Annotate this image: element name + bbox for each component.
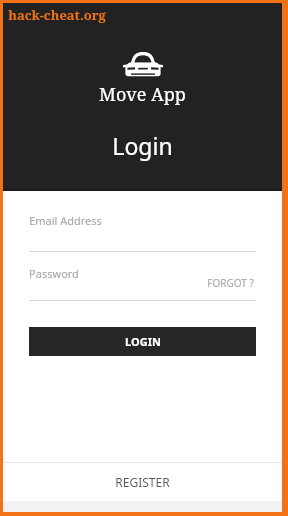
staticText: hack-cheat.org bbox=[8, 6, 106, 24]
staticText: FORGOT ? bbox=[207, 276, 254, 290]
staticText: Password bbox=[29, 266, 79, 281]
staticText: REGISTER bbox=[115, 474, 170, 490]
staticText: LOGIN bbox=[125, 334, 161, 349]
staticText: Email Address bbox=[29, 213, 102, 228]
staticText: Login bbox=[112, 130, 173, 161]
button[interactable]: Email Address bbox=[29, 213, 256, 251]
other: Car logo bbox=[123, 51, 163, 79]
button[interactable]: FORGOT ? bbox=[205, 275, 256, 291]
button[interactable]: LOGIN bbox=[29, 327, 256, 356]
button[interactable]: Password bbox=[29, 266, 205, 300]
button[interactable]: REGISTER bbox=[3, 463, 282, 501]
staticText: Move App bbox=[99, 82, 186, 107]
